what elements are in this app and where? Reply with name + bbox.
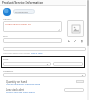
staticText: Search or add HSN code <box>5 48 34 51</box>
button[interactable]: 0.00 <box>53 62 83 66</box>
staticText: Quantity on hand <box>6 80 27 83</box>
button[interactable]: Crop <box>67 39 71 43</box>
button[interactable]: Search or add HSN code <box>3 47 86 51</box>
staticText: Category <box>3 69 14 72</box>
staticText: Price <box>3 58 9 61</box>
button[interactable]: Delete <box>80 39 84 43</box>
staticText: 0.00 <box>55 63 60 66</box>
staticText: Choose a category <box>5 74 27 77</box>
button[interactable]: Choose a category <box>3 73 86 77</box>
button[interactable] <box>3 38 62 43</box>
staticText: Low stock alert <box>6 88 25 91</box>
button[interactable]: Quantity on hand <box>6 80 84 86</box>
button[interactable]: Lorem ipsum dolor sit <box>3 21 62 32</box>
button[interactable]: Profile avatar <box>3 8 11 16</box>
button[interactable] <box>64 88 84 92</box>
staticText: Product/Service Information <box>2 1 44 5</box>
button[interactable]: Something <box>13 9 35 14</box>
button[interactable]: Edit <box>73 39 77 43</box>
button[interactable]: Find it here <box>31 52 43 55</box>
button[interactable]: Low stock alert <box>6 88 84 94</box>
button[interactable]: Upload image <box>67 20 84 37</box>
staticText: What's this low stock alert? <box>6 91 35 94</box>
staticText: Something <box>15 10 28 13</box>
staticText: Lorem ipsum dolor sit <box>5 22 31 25</box>
staticText: SKU <box>3 34 8 37</box>
staticText: Not sure about HSN code? <box>3 52 31 55</box>
button[interactable]: Product/Service Information <box>0 0 86 5</box>
staticText: HSN code <box>3 45 14 48</box>
staticText: Unit - Trade price <box>5 63 26 66</box>
staticText: Name * <box>3 17 12 20</box>
staticText: Add an inventory tracking value <box>6 83 41 86</box>
button[interactable]: Unit - Trade price <box>3 62 51 66</box>
